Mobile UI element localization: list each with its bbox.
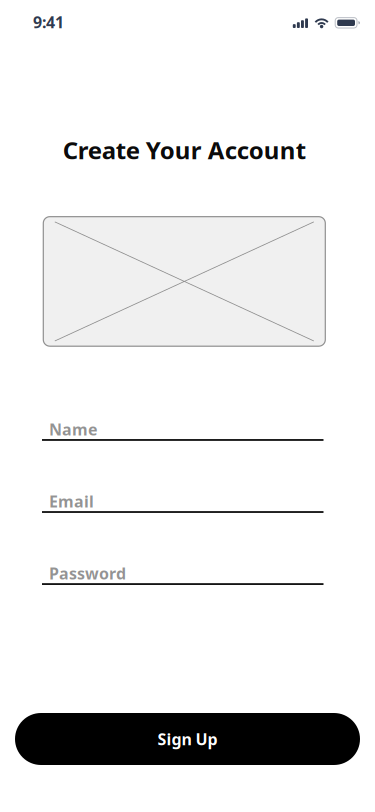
staticText: Email [49, 491, 94, 512]
button[interactable]: Password [43, 562, 324, 585]
staticText: Sign Up [157, 728, 217, 750]
staticText: 9:41 [33, 11, 64, 33]
staticText: Create Your Account [63, 134, 306, 166]
button[interactable]: Email [43, 490, 324, 513]
button[interactable]: Sign Up [15, 713, 360, 765]
staticText: Name [49, 419, 98, 440]
button[interactable]: Name [43, 418, 324, 441]
staticText: Password [49, 563, 126, 584]
